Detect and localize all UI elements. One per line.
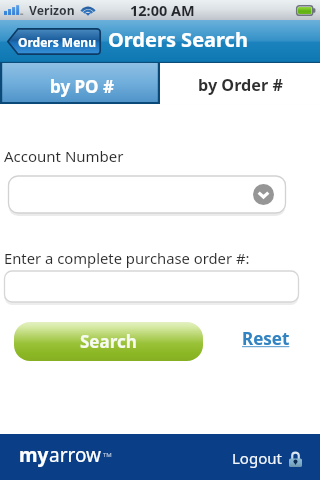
staticText: arrow	[49, 442, 102, 468]
button[interactable]: by PO #	[0, 63, 160, 104]
staticText: Verizon	[29, 2, 75, 19]
staticText: Account Number	[4, 146, 124, 166]
other: Select account number	[253, 184, 274, 205]
button[interactable]: Select account number	[7, 175, 287, 216]
staticText: Orders Menu	[18, 34, 96, 50]
button[interactable]: by Order #	[160, 63, 320, 104]
button[interactable]: Reset	[242, 327, 290, 350]
button[interactable]	[3, 270, 300, 306]
staticText: by PO #	[50, 75, 114, 98]
staticText: TM	[103, 451, 112, 459]
staticText: Logout	[232, 448, 282, 468]
button[interactable]: Orders Menu	[7, 28, 101, 55]
button[interactable]: Search	[14, 322, 203, 361]
other: Logout	[289, 450, 302, 467]
staticText: Search	[80, 330, 137, 353]
staticText: Orders Search	[108, 26, 248, 53]
staticText: 12:00 AM	[130, 0, 195, 20]
staticText: Enter a complete purchase order #:	[4, 248, 250, 268]
staticText: by Order #	[198, 74, 283, 96]
staticText: Reset	[242, 327, 290, 350]
button[interactable]: Logout	[232, 448, 302, 468]
staticText: my	[19, 442, 49, 468]
